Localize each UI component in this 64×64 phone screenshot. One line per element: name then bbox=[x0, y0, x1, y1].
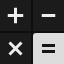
button[interactable]: Plus bbox=[0, 0, 31, 31]
button[interactable]: Minus bbox=[33, 0, 64, 31]
button[interactable]: Equals bbox=[33, 33, 64, 64]
button[interactable]: Multiply bbox=[0, 33, 31, 64]
